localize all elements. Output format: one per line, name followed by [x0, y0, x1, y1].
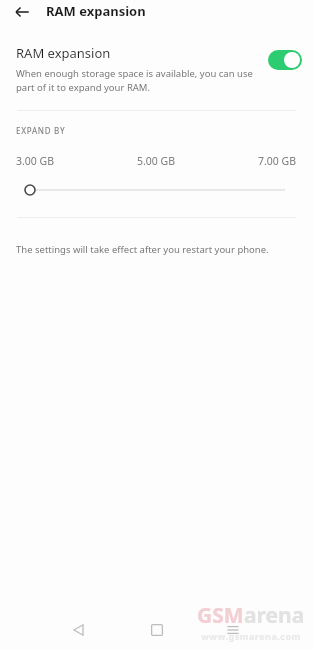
staticText: RAM expansion — [46, 2, 146, 20]
staticText: 5.00 GB — [137, 154, 176, 168]
staticText: RAM expansion — [16, 44, 111, 62]
button[interactable]: RAM expansion toggle — [268, 50, 302, 70]
button[interactable]: Back — [10, 0, 34, 24]
button[interactable]: Back — [67, 618, 91, 642]
staticText: 7.00 GB — [258, 154, 297, 168]
staticText: www.gsmarena.com — [201, 630, 301, 642]
staticText: When enough storage space is available, … — [16, 67, 262, 94]
staticText: arena — [244, 601, 305, 630]
button[interactable]: Home — [145, 618, 169, 642]
button[interactable]: Recent apps — [221, 618, 245, 642]
staticText: EXPAND BY — [16, 125, 66, 136]
staticText: The settings will take effect after you … — [16, 243, 269, 256]
button[interactable]: Expand by amount slider — [0, 180, 313, 200]
button[interactable]: RAM expansion — [0, 44, 313, 94]
staticText: 3.00 GB — [16, 154, 55, 168]
staticText: GSM — [197, 601, 244, 630]
